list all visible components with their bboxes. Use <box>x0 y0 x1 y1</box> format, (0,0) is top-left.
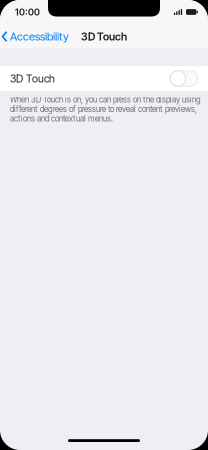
button[interactable]: 3D Touch <box>0 66 208 91</box>
staticText: 10:00 <box>15 6 40 18</box>
staticText: 3D Touch <box>81 30 127 43</box>
staticText: When 3D Touch is on, you can press on th… <box>10 95 201 123</box>
staticText: Accessibility <box>10 30 69 43</box>
button[interactable]: Accessibility <box>0 25 69 47</box>
staticText: 3D Touch <box>10 72 55 85</box>
